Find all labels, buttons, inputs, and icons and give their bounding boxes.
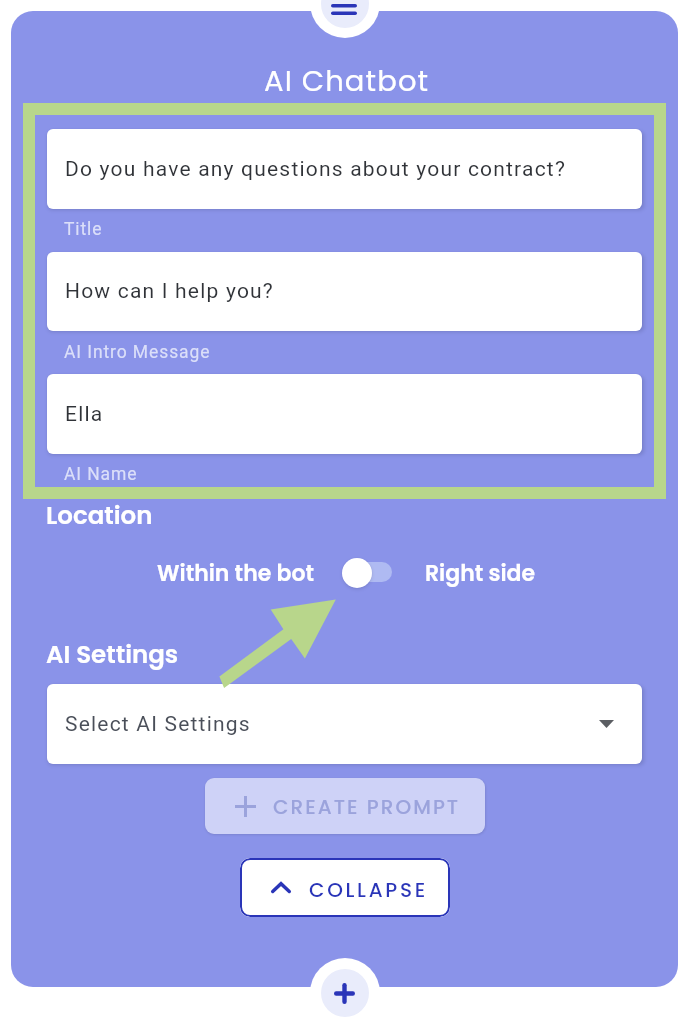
staticText: Right side: [425, 558, 536, 589]
staticText: CREATE PROMPT: [273, 793, 461, 821]
staticText: COLLAPSE: [309, 876, 428, 904]
staticText: AI Chatbot: [264, 61, 430, 102]
staticText: Within the bot: [157, 558, 314, 589]
staticText: Title: [64, 219, 103, 240]
staticText: Ella: [65, 402, 104, 427]
button[interactable]: Ella: [47, 374, 642, 454]
staticText: Location: [46, 498, 153, 532]
staticText: AI Settings: [46, 637, 179, 671]
button[interactable]: Location toggle: [344, 562, 392, 582]
staticText: AI Intro Message: [64, 342, 211, 363]
button[interactable]: [205, 778, 485, 834]
button[interactable]: Add: [310, 958, 380, 1024]
button[interactable]: How can I help you?: [47, 252, 642, 331]
staticText: Do you have any questions about your con…: [65, 157, 567, 182]
button[interactable]: Select AI Settings: [47, 684, 642, 764]
staticText: AI Name: [64, 464, 138, 485]
button[interactable]: Do you have any questions about your con…: [47, 129, 642, 209]
staticText: How can I help you?: [65, 279, 274, 304]
staticText: Select AI Settings: [65, 712, 251, 737]
button[interactable]: Menu: [310, 0, 380, 38]
button[interactable]: [240, 858, 450, 917]
